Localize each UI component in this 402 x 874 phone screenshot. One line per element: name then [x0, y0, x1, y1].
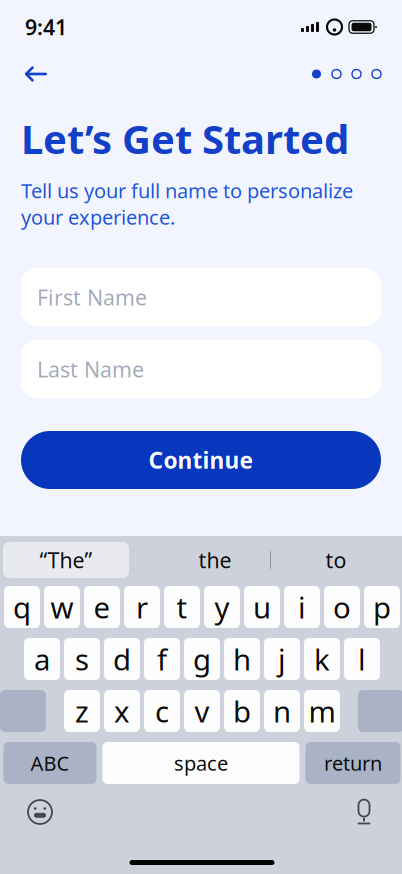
staticText: j [278, 639, 286, 678]
staticText: u [253, 587, 271, 626]
button[interactable]: l [344, 638, 380, 680]
staticText: t [176, 587, 187, 626]
button[interactable]: First Name [21, 268, 381, 326]
staticText: m [308, 691, 335, 730]
button[interactable]: r [124, 586, 160, 628]
button[interactable]: u [244, 586, 280, 628]
staticText: f [157, 639, 167, 678]
button[interactable]: c [144, 690, 180, 732]
staticText: h [233, 639, 251, 678]
button[interactable]: f [144, 638, 180, 680]
button[interactable]: Back [14, 57, 58, 91]
button[interactable]: i [284, 586, 320, 628]
button[interactable]: b [224, 690, 260, 732]
staticText: c [155, 691, 169, 730]
button[interactable]: Last Name [21, 340, 381, 398]
button[interactable]: Dictation [347, 795, 381, 829]
button[interactable]: n [264, 690, 300, 732]
staticText: to [325, 546, 346, 574]
button[interactable]: d [104, 638, 140, 680]
button[interactable]: z [64, 690, 100, 732]
staticText: x [114, 691, 130, 730]
staticText: ABC [30, 750, 69, 776]
button[interactable]: x [104, 690, 140, 732]
button[interactable]: m [304, 690, 340, 732]
staticText: space [174, 750, 228, 776]
staticText: Continue [148, 445, 253, 475]
staticText: s [75, 639, 89, 678]
staticText: k [314, 639, 330, 678]
button[interactable]: “The” [3, 542, 129, 578]
button[interactable]: y [204, 586, 240, 628]
staticText: g [193, 639, 211, 678]
staticText: n [273, 691, 291, 730]
staticText: i [298, 587, 306, 626]
button[interactable]: j [264, 638, 300, 680]
button[interactable]: return [305, 742, 400, 784]
button[interactable]: p [364, 586, 400, 628]
button[interactable]: v [184, 690, 220, 732]
button[interactable]: the [160, 542, 270, 578]
button[interactable]: Emoji keyboard [23, 795, 57, 829]
staticText: l [358, 639, 366, 678]
button[interactable]: q [4, 586, 40, 628]
staticText: b [233, 691, 251, 730]
button[interactable]: a [24, 638, 60, 680]
staticText: Let’s Get Started [21, 112, 349, 165]
button[interactable]: ABC [3, 742, 96, 784]
staticText: Tell us your full name to personalize yo… [21, 177, 353, 230]
button[interactable]: s [64, 638, 100, 680]
button[interactable]: k [304, 638, 340, 680]
button[interactable]: w [44, 586, 80, 628]
staticText: the [198, 546, 231, 574]
button[interactable] [0, 690, 46, 732]
staticText: e [93, 587, 110, 626]
staticText: p [373, 587, 391, 626]
staticText: z [75, 691, 89, 730]
button[interactable]: o [324, 586, 360, 628]
staticText: “The” [39, 546, 92, 574]
button[interactable]: to [271, 542, 401, 578]
staticText: r [136, 587, 148, 626]
button[interactable]: t [164, 586, 200, 628]
staticText: First Name [37, 283, 147, 311]
staticText: w [50, 587, 73, 626]
staticText: d [113, 639, 131, 678]
staticText: Last Name [37, 355, 144, 383]
staticText: o [333, 587, 351, 626]
staticText: 9:41 [25, 13, 67, 41]
staticText: q [13, 587, 31, 626]
button[interactable]: space [102, 742, 299, 784]
staticText: return [324, 750, 382, 776]
staticText: y [214, 587, 229, 626]
button[interactable]: h [224, 638, 260, 680]
button[interactable]: Continue [21, 431, 381, 489]
button[interactable]: g [184, 638, 220, 680]
button[interactable]: e [84, 586, 120, 628]
staticText: v [194, 691, 209, 730]
staticText: a [34, 639, 50, 678]
